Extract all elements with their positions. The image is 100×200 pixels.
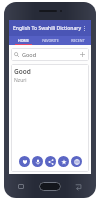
button[interactable]: Share <box>45 156 56 167</box>
button[interactable]: Rate <box>58 156 69 167</box>
staticText: RECENT <box>71 38 85 43</box>
button[interactable]: Favorite <box>19 156 30 167</box>
staticText: Good <box>22 51 37 58</box>
button[interactable]: Good <box>11 48 89 61</box>
button[interactable]: Pronounce <box>32 156 43 167</box>
button[interactable]: RECENT <box>64 36 91 45</box>
staticText: FAVORITE <box>42 38 59 43</box>
button[interactable]: More options <box>82 24 87 32</box>
button[interactable]: Open web <box>71 156 82 167</box>
staticText: HOME <box>18 38 29 43</box>
staticText: Nzuri <box>14 77 27 84</box>
button[interactable]: Recents <box>18 184 24 189</box>
button[interactable]: Add word <box>79 51 86 58</box>
button[interactable]: FAVORITE <box>37 36 64 45</box>
button[interactable]: HOME <box>9 36 37 45</box>
button[interactable]: Back <box>75 183 82 190</box>
staticText: English To Swahili Dictionary <box>13 25 82 32</box>
staticText: Good <box>14 67 31 76</box>
button[interactable]: Home <box>39 182 61 191</box>
button[interactable]: Good <box>11 64 89 172</box>
